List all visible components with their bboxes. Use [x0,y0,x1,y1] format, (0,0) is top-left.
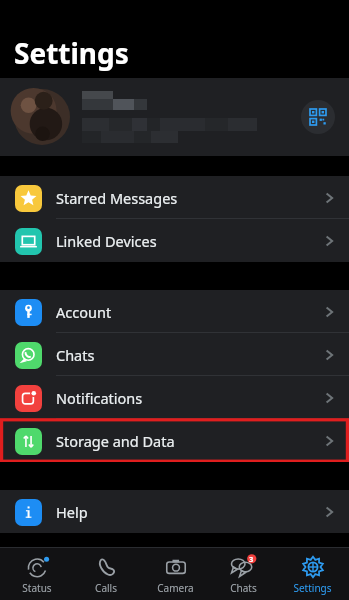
staticText: Settings [14,34,129,72]
button[interactable]: Calls [74,550,138,599]
button[interactable]: Help [0,490,349,533]
button[interactable]: Starred Messages [0,176,349,219]
button[interactable]: Settings [280,550,344,599]
staticText: 3 [249,554,254,563]
button[interactable]: Chats [0,333,349,376]
staticText: Status [22,581,52,595]
button[interactable]: QR code [301,100,335,134]
staticText: Calls [95,581,117,595]
button[interactable]: 3 [211,550,275,599]
staticText: Chats [56,345,95,365]
button[interactable]: Account [0,290,349,333]
button[interactable]: QR code [0,78,349,156]
button[interactable]: Notifications [0,376,349,419]
button[interactable]: Linked Devices [0,219,349,262]
staticText: Starred Messages [56,188,178,208]
staticText: Storage and Data [56,431,175,451]
staticText: Camera [157,581,194,595]
button[interactable]: Camera [143,550,207,599]
button[interactable]: Storage and Data [0,419,349,462]
staticText: Settings [293,581,332,595]
staticText: Notifications [56,388,143,408]
staticText: Linked Devices [56,231,157,251]
staticText: Chats [230,581,257,595]
button[interactable]: Status [5,550,69,599]
staticText: Help [56,502,88,522]
staticText: Account [56,302,112,322]
